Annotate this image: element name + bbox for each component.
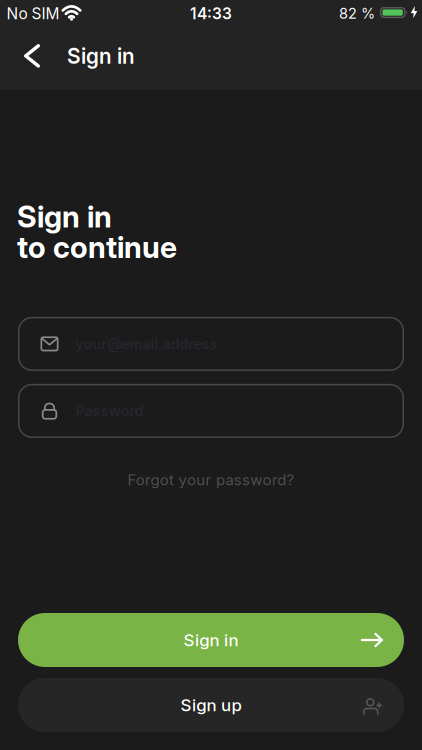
button[interactable]: Sign up	[18, 678, 404, 732]
staticText: Sign up	[181, 695, 241, 715]
staticText: Password	[75, 402, 143, 419]
button[interactable]: your@email.address	[18, 317, 404, 371]
staticText: Sign in	[67, 44, 135, 68]
staticText: your@email.address	[75, 335, 217, 352]
staticText: Sign in	[17, 199, 112, 234]
button[interactable]: Forgot your password?	[127, 471, 294, 489]
button[interactable]: Back	[0, 44, 40, 68]
button[interactable]: Password	[18, 384, 404, 438]
staticText: 82 %	[339, 5, 375, 22]
staticText: to continue	[17, 229, 177, 265]
staticText: Forgot your password?	[127, 471, 294, 489]
staticText: 14:33	[190, 4, 232, 23]
button[interactable]: Sign in	[18, 613, 404, 667]
staticText: Sign in	[184, 630, 238, 650]
staticText: No SIM	[6, 4, 59, 23]
